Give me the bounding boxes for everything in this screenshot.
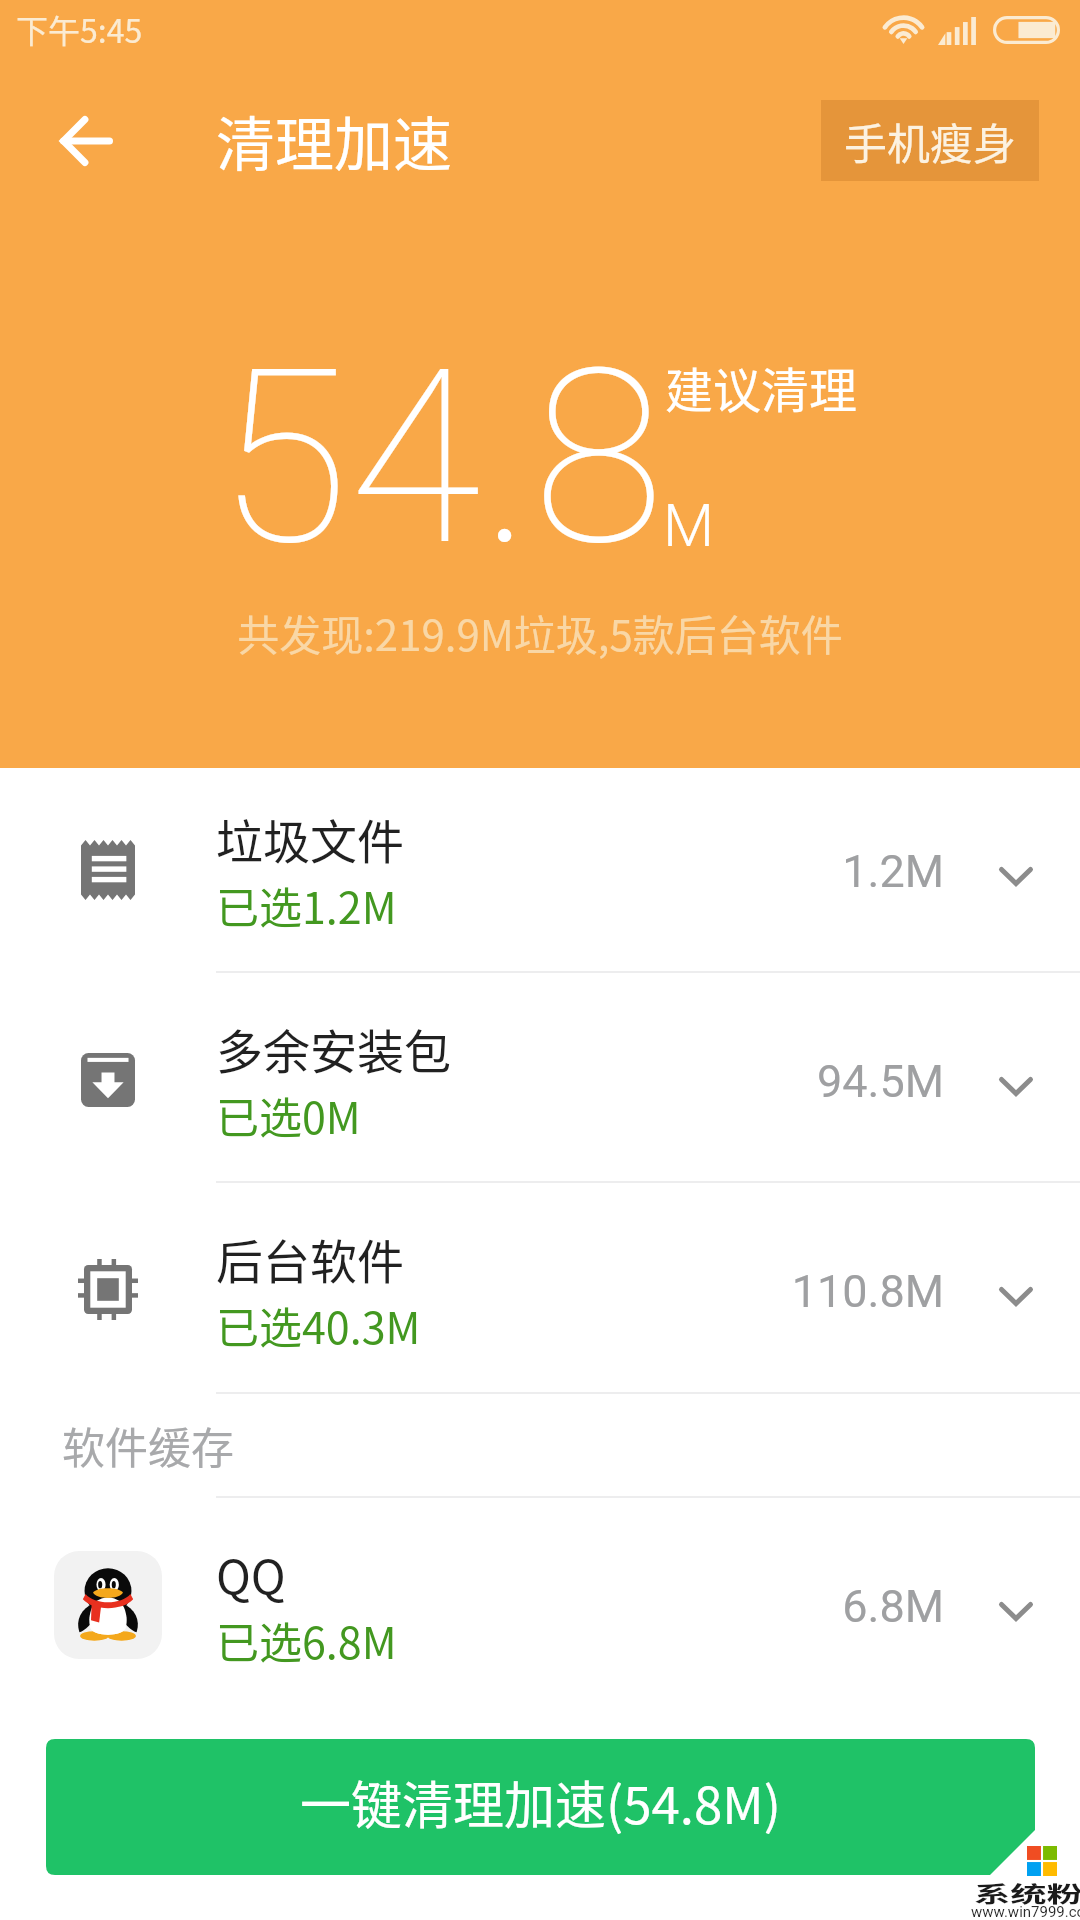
staticText: M bbox=[663, 491, 715, 560]
button[interactable]: 一键清理加速(54.8M) bbox=[46, 1739, 1035, 1875]
staticText: 清理加速 bbox=[216, 98, 453, 183]
staticText: 建议清理 bbox=[665, 352, 858, 422]
button[interactable]: 垃圾文件 bbox=[0, 768, 1080, 971]
staticText: 1.2M bbox=[842, 845, 944, 898]
staticText: 已选6.8M bbox=[216, 1609, 397, 1671]
staticText: 手机瘦身 bbox=[844, 110, 1016, 172]
staticText: 110.8M bbox=[791, 1265, 944, 1318]
staticText: 垃圾文件 bbox=[216, 804, 404, 872]
staticText: www.win7999.com bbox=[971, 1903, 1080, 1920]
staticText: 共发现:219.9M垃圾,5款后台软件 bbox=[0, 602, 1080, 663]
staticText: 多余安装包 bbox=[216, 1014, 451, 1082]
staticText: 已选40.3M bbox=[216, 1294, 421, 1356]
button[interactable]: 后台软件 bbox=[0, 1188, 1080, 1391]
button[interactable]: 多余安装包 bbox=[0, 978, 1080, 1181]
staticText: 系统粉 bbox=[974, 1876, 1080, 1908]
button[interactable]: Back bbox=[38, 93, 134, 189]
staticText: 已选1.2M bbox=[216, 874, 397, 936]
staticText: 下午5:45 bbox=[16, 6, 143, 52]
button[interactable]: 手机瘦身 bbox=[821, 100, 1039, 181]
staticText: 94.5M bbox=[816, 1055, 944, 1108]
staticText: 软件缓存 bbox=[62, 1414, 234, 1476]
staticText: 已选0M bbox=[216, 1084, 361, 1146]
staticText: 一键清理加速(54.8M) bbox=[300, 1765, 781, 1839]
button[interactable]: QQ bbox=[0, 1503, 1080, 1706]
staticText: 54.8 bbox=[217, 317, 665, 599]
staticText: QQ bbox=[216, 1539, 286, 1607]
staticText: 6.8M bbox=[842, 1580, 944, 1633]
staticText: 后台软件 bbox=[216, 1224, 404, 1292]
